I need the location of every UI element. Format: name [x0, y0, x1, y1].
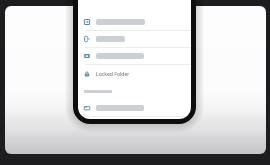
button[interactable] — [78, 47, 191, 64]
button[interactable] — [78, 30, 191, 47]
button[interactable] — [78, 99, 191, 116]
button[interactable]: Locked Folder — [78, 65, 191, 82]
button[interactable] — [78, 13, 191, 30]
staticText: Locked Folder — [96, 71, 130, 78]
